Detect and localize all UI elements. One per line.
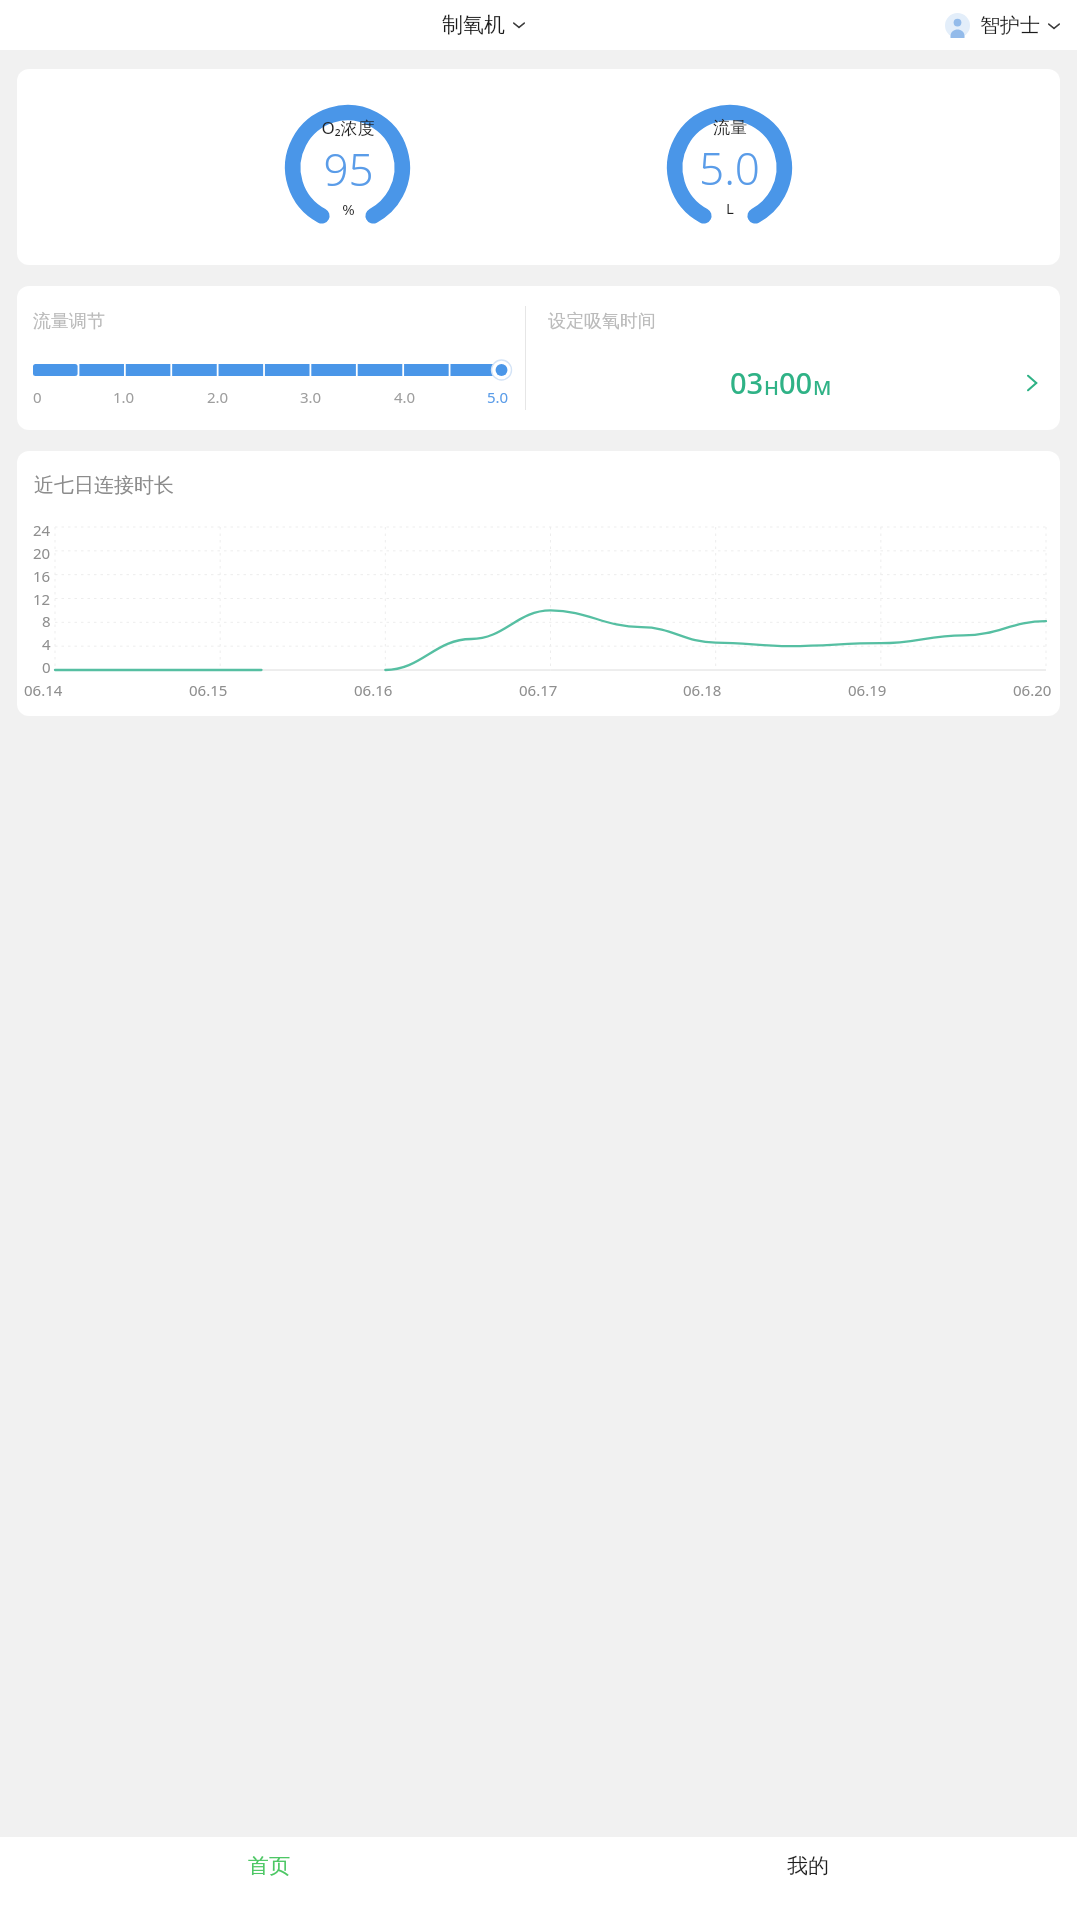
button[interactable]	[33, 359, 513, 381]
staticText: 06.14	[24, 680, 63, 700]
button[interactable]: 制氧机	[438, 9, 529, 41]
button[interactable]: 流量调节	[17, 286, 525, 430]
staticText: 06.17	[519, 680, 558, 700]
staticText: L	[726, 198, 734, 218]
staticText: 20	[33, 543, 51, 563]
staticText: 06.20	[1013, 680, 1052, 700]
staticText: 06.15	[189, 680, 228, 700]
staticText: 3.0	[300, 387, 322, 407]
staticText: M	[813, 374, 832, 401]
staticText: 4	[42, 634, 51, 654]
staticText: 8	[42, 611, 51, 631]
staticText: 5.0	[699, 138, 760, 198]
button[interactable]: 设定吸氧时间	[526, 286, 1060, 430]
staticText: 00	[779, 363, 813, 402]
staticText: 06.16	[354, 680, 393, 700]
staticText: 06.19	[848, 680, 887, 700]
staticText: 制氧机	[442, 12, 505, 38]
button[interactable]: 智护士	[941, 10, 1064, 41]
staticText: 24	[33, 520, 51, 540]
staticText: 流量调节	[33, 310, 105, 333]
staticText: 智护士	[980, 13, 1040, 38]
staticText: 首页	[248, 1853, 290, 1879]
button[interactable]: 首页	[0, 1853, 538, 1917]
staticText: 设定吸氧时间	[548, 310, 656, 333]
staticText: 03	[730, 363, 764, 402]
staticText: H	[764, 374, 779, 401]
staticText: 16	[33, 566, 51, 586]
staticText: 0	[42, 657, 51, 677]
staticText: 4.0	[394, 387, 416, 407]
staticText: 06.18	[683, 680, 722, 700]
staticText: 95	[323, 139, 374, 199]
staticText: O₂浓度	[321, 116, 375, 139]
staticText: %	[342, 199, 355, 219]
staticText: 流量	[713, 117, 747, 138]
staticText: 近七日连接时长	[34, 473, 174, 498]
staticText: 1.0	[113, 387, 135, 407]
staticText: 我的	[787, 1853, 829, 1879]
staticText: 0	[33, 387, 42, 407]
staticText: 5.0	[487, 387, 509, 407]
staticText: 12	[33, 589, 51, 609]
button[interactable]: 我的	[538, 1853, 1077, 1917]
staticText: 2.0	[207, 387, 229, 407]
button[interactable]: 设定吸氧时间	[1017, 368, 1047, 398]
